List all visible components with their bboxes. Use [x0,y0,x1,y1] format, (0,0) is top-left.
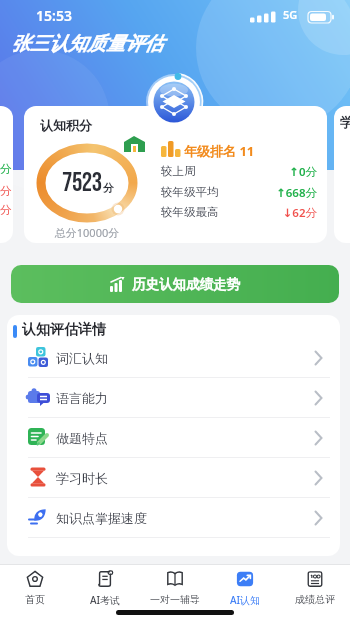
button[interactable]: 一对一辅导 [140,569,210,615]
button[interactable]: 知识点掌握速度 [7,498,340,538]
staticText: 分 [0,162,12,176]
staticText: 词汇认知 [56,350,108,366]
staticText: ↑668分 [217,185,317,201]
staticText: 语言能力 [56,390,108,406]
button[interactable]: 首页 [0,569,70,615]
staticText: 分 [0,203,12,217]
staticText: 总分10000分 [47,225,127,240]
button[interactable]: AI认知 [210,569,280,615]
staticText: 较年级最高 [161,205,219,219]
button[interactable]: 语言能力 [7,378,340,418]
staticText: 知识点掌握速度 [56,510,147,526]
staticText: ↑0分 [217,164,317,180]
staticText: ↓62分 [217,205,317,221]
button[interactable]: 成绩总评 [280,569,350,615]
staticText: 5G [283,7,298,22]
staticText: 历史认知成绩走势 [132,276,240,293]
staticText: 较上周 [161,164,196,178]
staticText: 做题特点 [56,430,108,446]
staticText: 认知积分 [40,117,92,133]
button[interactable]: 学习时长 [7,458,340,498]
staticText: 分 [103,181,114,195]
staticText: 成绩总评 [295,593,335,606]
staticText: 一对一辅导 [150,593,200,606]
staticText: 首页 [25,593,45,606]
button[interactable]: 词汇认知 [7,338,340,378]
staticText: 分 [0,184,12,198]
staticText: 学 [340,114,350,130]
button[interactable]: 历史认知成绩走势 [11,265,339,303]
button[interactable]: AI考试 [70,569,140,615]
staticText: 较年级平均 [161,185,219,199]
staticText: 认知评估详情 [22,321,106,339]
staticText: 年级排名 11 [184,142,255,160]
staticText: 15:53 [36,6,72,25]
staticText: AI认知 [230,593,261,607]
staticText: 张三认知质量评估 [11,32,163,56]
staticText: 学习时长 [56,470,108,486]
staticText: AI考试 [90,593,121,607]
button[interactable]: 做题特点 [7,418,340,458]
button[interactable]: 认知积分 [24,106,327,243]
staticText: 7523 [62,168,102,199]
